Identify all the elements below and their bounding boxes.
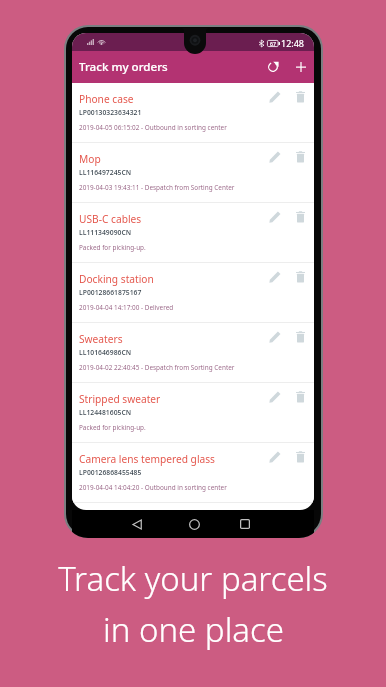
button[interactable]: Edit bbox=[265, 447, 285, 467]
button[interactable]: Mop bbox=[72, 143, 314, 203]
staticText: 12:48 bbox=[281, 37, 305, 49]
staticText: 2019-04-02 22:40:45 - Despatch from Sort… bbox=[79, 363, 235, 372]
button[interactable]: Delete bbox=[290, 447, 310, 467]
staticText: Packed for picking-up. bbox=[79, 243, 146, 252]
button[interactable]: Stripped sweater bbox=[72, 383, 314, 443]
staticText: 2019-04-03 19:43:11 - Despatch from Sort… bbox=[79, 183, 235, 192]
staticText: LP00126868455485 bbox=[79, 468, 142, 477]
staticText: LL111349090CN bbox=[79, 228, 132, 237]
staticText: LL124481605CN bbox=[79, 408, 132, 417]
button[interactable]: Phone case bbox=[72, 83, 314, 143]
button[interactable]: Home bbox=[181, 511, 207, 537]
staticText: LP00130323634321 bbox=[79, 108, 142, 117]
button[interactable]: Edit bbox=[265, 147, 285, 167]
button[interactable]: Edit bbox=[265, 327, 285, 347]
button[interactable]: Delete bbox=[290, 207, 310, 227]
button[interactable]: USB-C cables bbox=[72, 203, 314, 263]
staticText: LL101646986CN bbox=[79, 348, 132, 357]
button[interactable]: Edit bbox=[265, 387, 285, 407]
staticText: Camera lens tempered glass bbox=[79, 452, 215, 466]
staticText: Docking station bbox=[79, 272, 154, 286]
button[interactable]: Edit bbox=[265, 267, 285, 287]
button[interactable]: Edit bbox=[265, 207, 285, 227]
staticText: 67 bbox=[270, 40, 276, 47]
button[interactable]: Delete bbox=[290, 387, 310, 407]
staticText: 2019-04-04 14:04:20 - Outbound in sortin… bbox=[79, 483, 227, 492]
button[interactable]: Camera lens tempered glass bbox=[72, 443, 314, 503]
button[interactable]: Add order bbox=[289, 55, 313, 79]
button[interactable]: Sweaters bbox=[72, 323, 314, 383]
button[interactable]: Delete bbox=[290, 267, 310, 287]
staticText: USB-C cables bbox=[79, 212, 142, 226]
staticText: Sweaters bbox=[79, 332, 123, 346]
button[interactable]: Recent apps bbox=[232, 511, 258, 537]
button[interactable]: Docking station bbox=[72, 263, 314, 323]
staticText: Stripped sweater bbox=[79, 392, 161, 406]
staticText: Track my orders bbox=[79, 59, 168, 75]
staticText: LL116497245CN bbox=[79, 168, 132, 177]
staticText: Track your parcels bbox=[58, 556, 328, 601]
button[interactable]: Delete bbox=[290, 87, 310, 107]
button[interactable]: Delete bbox=[290, 327, 310, 347]
staticText: Mop bbox=[79, 152, 101, 166]
button[interactable]: Refresh bbox=[261, 55, 285, 79]
staticText: 2019-04-05 06:15:02 - Outbound in sortin… bbox=[79, 123, 227, 132]
button[interactable]: Edit bbox=[265, 87, 285, 107]
staticText: LP00128661875167 bbox=[79, 288, 142, 297]
staticText: Packed for picking-up. bbox=[79, 423, 146, 432]
button[interactable]: Back bbox=[124, 511, 150, 537]
staticText: in one place bbox=[103, 607, 284, 652]
button[interactable]: Delete bbox=[290, 147, 310, 167]
staticText: 2019-04-04 14:17:00 - Delivered bbox=[79, 303, 174, 312]
staticText: Phone case bbox=[79, 92, 134, 106]
